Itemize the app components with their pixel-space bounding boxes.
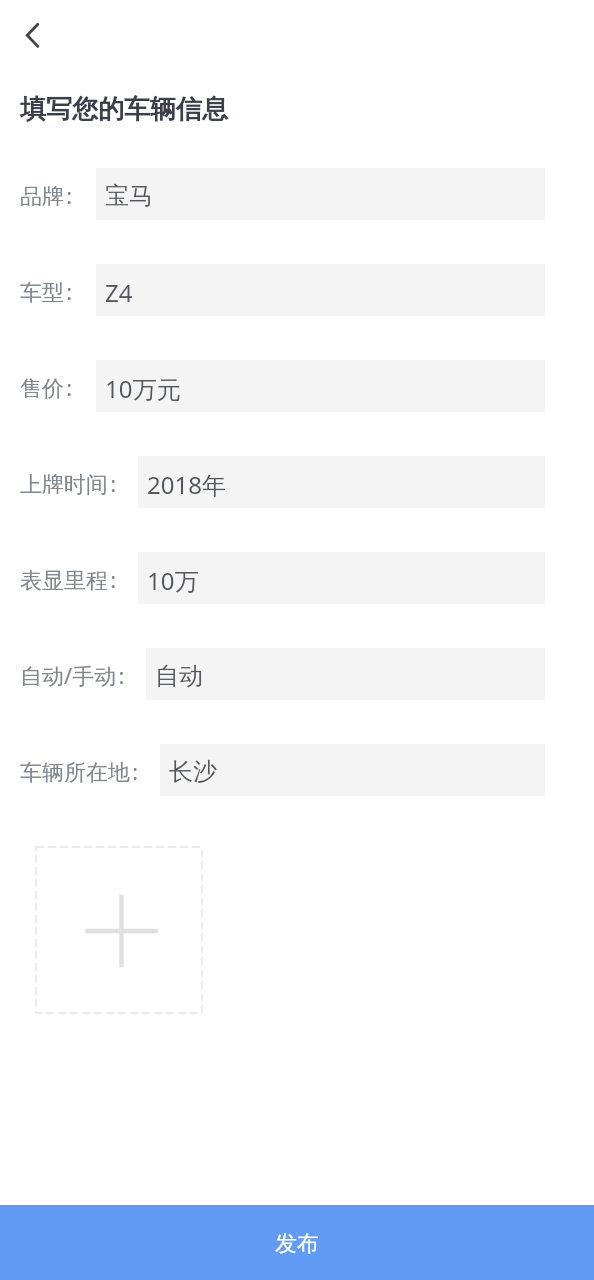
staticText: 自动/手动 : xyxy=(20,660,125,690)
staticText: 表显里程 : xyxy=(20,564,117,594)
button[interactable]: 长沙 xyxy=(160,744,545,796)
staticText: Z4 xyxy=(105,276,133,309)
staticText: 宝马 xyxy=(105,181,153,211)
staticText: 发布 xyxy=(275,1230,319,1258)
staticText: 售价 : xyxy=(20,372,73,402)
staticText: 自动 xyxy=(155,661,203,691)
staticText: 车辆所在地 : xyxy=(20,756,139,786)
button[interactable]: 自动 xyxy=(146,648,545,700)
button[interactable]: 2018年 xyxy=(138,456,545,508)
button[interactable]: 发布 xyxy=(0,1205,594,1280)
staticText: 上牌时间 : xyxy=(20,468,117,498)
staticText: 10万元 xyxy=(105,372,181,405)
staticText: 长沙 xyxy=(169,757,217,787)
staticText: 品牌 : xyxy=(20,180,73,210)
button[interactable]: Z4 xyxy=(96,264,545,316)
button[interactable]: 10万元 xyxy=(96,360,545,412)
staticText: 10万 xyxy=(147,564,199,597)
staticText: 车型 : xyxy=(20,276,73,306)
button[interactable]: 宝马 xyxy=(96,168,545,220)
staticText: 填写您的车辆信息 xyxy=(20,93,228,126)
staticText: 2018年 xyxy=(147,468,226,501)
button[interactable]: Back xyxy=(0,5,62,65)
button[interactable]: Add photo xyxy=(36,847,202,1013)
button[interactable]: 10万 xyxy=(138,552,545,604)
